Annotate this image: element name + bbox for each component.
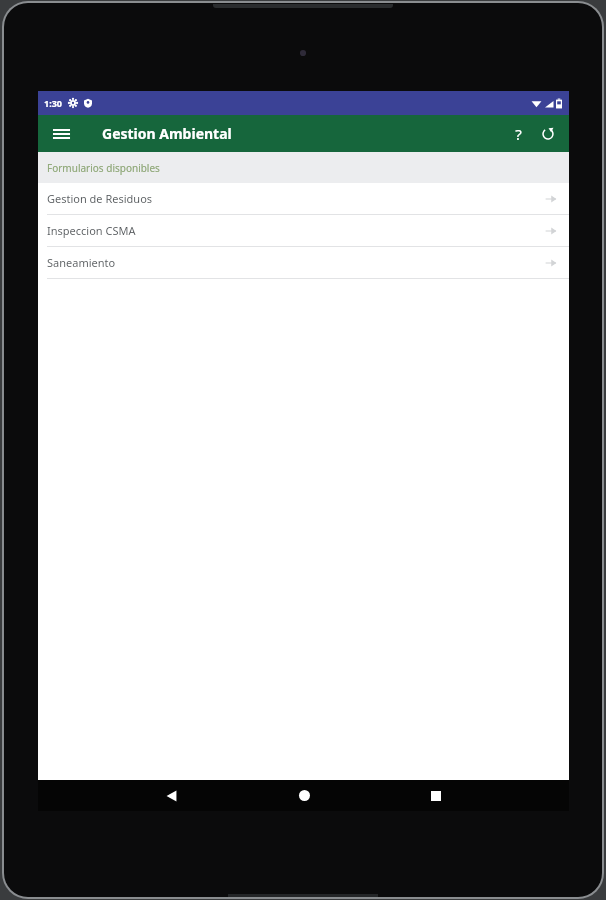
staticText: Saneamiento <box>47 255 545 270</box>
staticText: 1:30 <box>44 97 62 109</box>
staticText: Inspeccion CSMA <box>47 223 545 238</box>
staticText: Formularios disponibles <box>47 161 160 175</box>
button[interactable]: Help <box>503 119 533 149</box>
button[interactable]: Home <box>284 780 324 811</box>
staticText: Gestion Ambiental <box>102 124 232 143</box>
button[interactable]: Open navigation menu <box>46 119 76 149</box>
button[interactable]: Gestion de Residuos <box>38 183 569 214</box>
button[interactable]: Saneamiento <box>38 247 569 278</box>
button[interactable]: Back <box>151 780 191 811</box>
staticText: ? <box>515 124 522 144</box>
button[interactable]: Refresh <box>533 119 563 149</box>
button[interactable]: Inspeccion CSMA <box>38 215 569 246</box>
staticText: Gestion de Residuos <box>47 191 545 206</box>
button[interactable]: Recent apps <box>416 780 456 811</box>
